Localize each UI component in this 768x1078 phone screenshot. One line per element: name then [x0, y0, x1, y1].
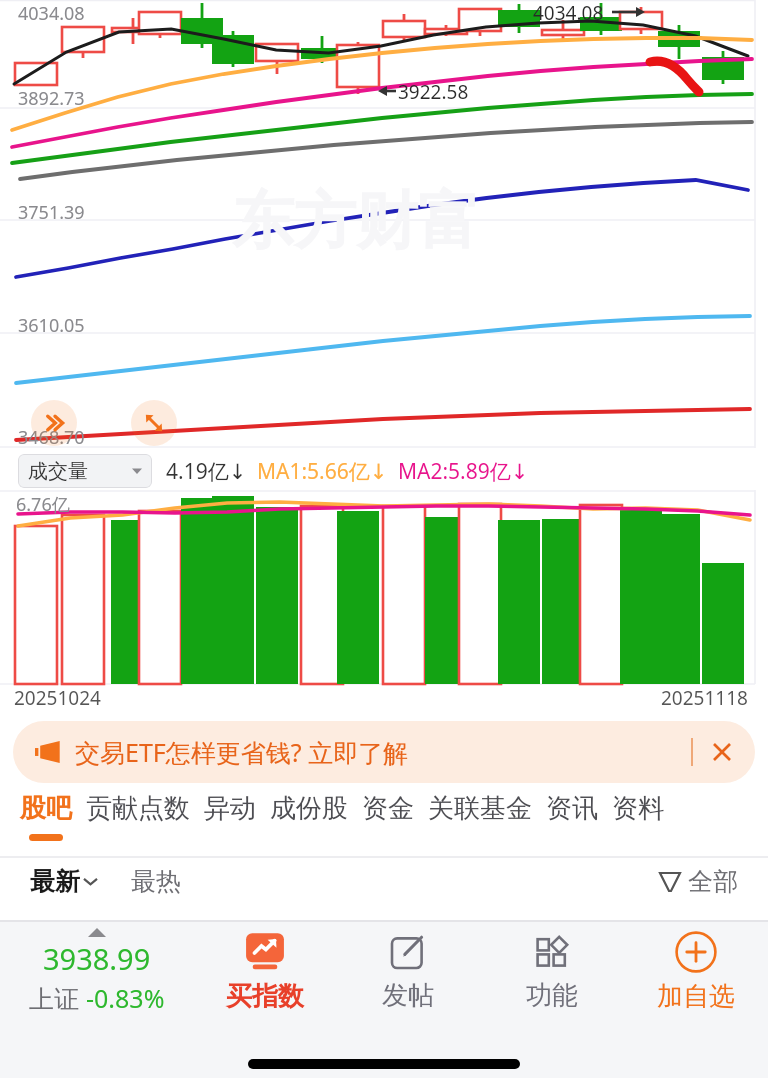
- staticText: 最新: [30, 866, 80, 897]
- staticText: 3938.99: [43, 939, 151, 978]
- button[interactable]: 股吧: [13, 792, 79, 841]
- staticText: 20251118: [661, 685, 748, 711]
- staticText: 资讯: [546, 792, 598, 825]
- button[interactable]: 资料: [605, 792, 671, 834]
- staticText: MA2:5.89亿↓: [398, 457, 529, 486]
- button[interactable]: 3938.99: [0, 922, 193, 1021]
- staticText: -0.83%: [86, 981, 165, 1015]
- staticText: 4034.08: [18, 1, 85, 26]
- staticText: 全部: [688, 866, 738, 897]
- staticText: 交易ETF怎样更省钱? 立即了解: [75, 735, 409, 769]
- staticText: 资金: [362, 792, 414, 825]
- staticText: 关联基金: [428, 792, 532, 825]
- button[interactable]: 关联基金: [421, 792, 539, 834]
- button[interactable]: 最新: [30, 866, 97, 897]
- staticText: 4.19亿↓: [166, 457, 247, 486]
- staticText: 发帖: [382, 979, 434, 1012]
- button[interactable]: 全部: [659, 866, 738, 897]
- staticText: 6.76亿: [16, 492, 70, 517]
- staticText: 3922.58: [398, 79, 469, 105]
- button[interactable]: 买指数: [193, 922, 336, 1021]
- button[interactable]: 成交量: [18, 454, 152, 488]
- staticText: 东方财富: [232, 182, 480, 260]
- staticText: 买指数: [226, 980, 304, 1013]
- button[interactable]: 最热: [131, 866, 181, 897]
- staticText: 功能: [526, 979, 578, 1012]
- button[interactable]: 加自选: [624, 922, 768, 1021]
- button[interactable]: 资金: [355, 792, 421, 834]
- staticText: 3610.05: [18, 313, 85, 338]
- button[interactable]: Fullscreen: [131, 400, 177, 446]
- staticText: 20251024: [14, 685, 101, 711]
- staticText: 上证: [29, 981, 86, 1015]
- button[interactable]: 交易ETF怎样更省钱? 立即了解: [13, 721, 755, 783]
- button[interactable]: Next period: [31, 400, 77, 446]
- staticText: 加自选: [657, 980, 735, 1013]
- staticText: 3892.73: [18, 86, 85, 111]
- button[interactable]: 异动: [197, 792, 263, 834]
- button[interactable]: 功能: [480, 922, 624, 1021]
- button[interactable]: 成份股: [263, 792, 355, 834]
- button[interactable]: 资讯: [539, 792, 605, 834]
- staticText: 贡献点数: [86, 792, 190, 825]
- staticText: 3468.70: [18, 425, 85, 450]
- staticText: 成份股: [270, 792, 348, 825]
- staticText: 股吧: [20, 792, 72, 825]
- staticText: 成交量: [28, 459, 88, 484]
- staticText: MA1:5.66亿↓: [257, 457, 388, 486]
- button[interactable]: 发帖: [336, 922, 480, 1021]
- button[interactable]: Close: [707, 737, 737, 767]
- staticText: 资料: [612, 792, 664, 825]
- staticText: 3751.39: [18, 200, 85, 225]
- button[interactable]: 贡献点数: [79, 792, 197, 834]
- staticText: 异动: [204, 792, 256, 825]
- staticText: 4034.08: [533, 0, 604, 26]
